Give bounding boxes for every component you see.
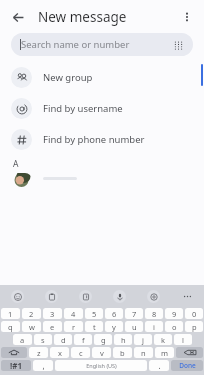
button[interactable]: p <box>185 321 203 332</box>
button[interactable]: 6 <box>105 308 123 319</box>
button[interactable]: !#1 <box>1 360 31 371</box>
staticText: q <box>8 322 13 332</box>
button[interactable]: Backspace <box>176 347 203 358</box>
button[interactable]: Clipboard <box>34 285 68 307</box>
staticText: r <box>72 322 76 332</box>
button[interactable]: Search name or number <box>11 33 193 56</box>
staticText: Done <box>179 361 196 370</box>
button[interactable]: Emoji <box>0 285 34 307</box>
button[interactable]: z <box>29 347 48 358</box>
staticText: i <box>153 322 155 332</box>
staticText: j <box>142 335 144 345</box>
button[interactable]: 3 <box>43 308 62 319</box>
button[interactable]: Back <box>6 5 30 29</box>
button[interactable]: , <box>33 360 53 371</box>
button[interactable]: . <box>149 360 169 371</box>
button[interactable]: 7 <box>125 308 143 319</box>
button[interactable]: b <box>113 347 132 358</box>
button[interactable]: m <box>155 347 174 358</box>
button[interactable]: c <box>71 347 90 358</box>
button[interactable]: a <box>13 334 32 345</box>
button[interactable]: English (US) <box>55 360 147 371</box>
staticText: 7 <box>132 309 137 319</box>
button[interactable]: 5 <box>85 308 103 319</box>
staticText: z <box>37 348 41 358</box>
button[interactable]: l <box>174 334 192 345</box>
staticText: 4 <box>71 309 76 319</box>
staticText: !#1 <box>10 360 22 371</box>
staticText: 5 <box>92 309 97 319</box>
staticText: 0 <box>192 309 197 319</box>
staticText: c <box>79 348 83 358</box>
button[interactable]: w <box>22 321 41 332</box>
button[interactable]: n <box>134 347 153 358</box>
button[interactable]: Dialpad <box>171 38 185 52</box>
staticText: n <box>141 348 146 358</box>
staticText: k <box>161 335 166 345</box>
button[interactable]: e <box>43 321 62 332</box>
staticText: a <box>20 335 25 345</box>
button[interactable]: u <box>125 321 143 332</box>
staticText: v <box>100 348 104 358</box>
button[interactable]: k <box>154 334 172 345</box>
button[interactable]: 8 <box>145 308 163 319</box>
button[interactable]: x <box>50 347 69 358</box>
button[interactable]: Shift <box>1 347 27 358</box>
staticText: 3 <box>50 309 55 319</box>
staticText: g <box>101 335 106 345</box>
staticText: p <box>192 322 197 332</box>
staticText: 1 <box>8 309 13 319</box>
button[interactable]: Settings <box>136 285 170 307</box>
button[interactable] <box>0 173 204 187</box>
staticText: Find by username <box>43 102 123 115</box>
button[interactable]: j <box>134 334 152 345</box>
staticText: Search name or number <box>21 38 130 51</box>
staticText: h <box>121 335 126 345</box>
staticText: 2 <box>29 309 34 319</box>
staticText: m <box>161 348 169 358</box>
staticText: o <box>172 322 177 332</box>
staticText: 6 <box>112 309 117 319</box>
button[interactable]: r <box>64 321 83 332</box>
staticText: l <box>182 335 184 345</box>
button[interactable]: y <box>105 321 123 332</box>
button[interactable]: 2 <box>22 308 41 319</box>
staticText: f <box>82 335 85 345</box>
button[interactable]: Voice input <box>102 285 136 307</box>
staticText: A <box>13 158 19 170</box>
button[interactable]: d <box>54 334 72 345</box>
staticText: t <box>93 322 96 332</box>
staticText: e <box>50 322 55 332</box>
button[interactable]: 1 <box>1 308 20 319</box>
button[interactable]: g <box>94 334 112 345</box>
button[interactable]: i <box>145 321 163 332</box>
button[interactable]: New group <box>0 62 204 93</box>
button[interactable]: h <box>114 334 132 345</box>
staticText: x <box>58 348 62 358</box>
button[interactable]: t <box>85 321 103 332</box>
staticText: d <box>61 335 66 345</box>
button[interactable]: Text edit <box>68 285 102 307</box>
button[interactable]: o <box>165 321 183 332</box>
button[interactable]: More <box>170 285 204 307</box>
staticText: Find by phone number <box>43 133 145 146</box>
button[interactable]: 4 <box>64 308 83 319</box>
button[interactable]: 0 <box>185 308 203 319</box>
button[interactable]: More options <box>176 6 198 28</box>
staticText: New group <box>43 71 93 84</box>
staticText: 9 <box>172 309 177 319</box>
button[interactable]: v <box>92 347 111 358</box>
button[interactable]: Done <box>171 360 203 371</box>
staticText: y <box>112 322 116 332</box>
staticText: New message <box>38 8 127 26</box>
button[interactable]: q <box>1 321 20 332</box>
button[interactable]: Find by username <box>0 93 204 124</box>
button[interactable]: 9 <box>165 308 183 319</box>
button[interactable]: s <box>34 334 52 345</box>
staticText: w <box>29 322 35 332</box>
button[interactable]: Find by phone number <box>0 124 204 155</box>
button[interactable]: f <box>74 334 92 345</box>
staticText: . <box>158 360 161 371</box>
staticText: u <box>132 322 137 332</box>
staticText: s <box>41 335 45 345</box>
